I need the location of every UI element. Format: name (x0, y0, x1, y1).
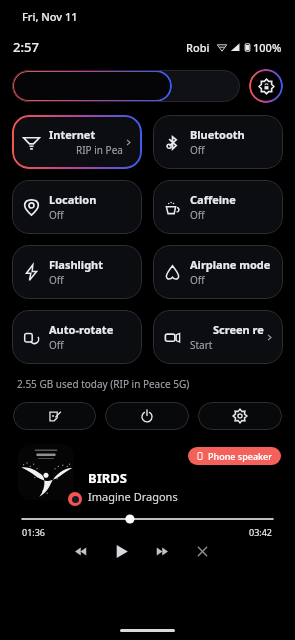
button[interactable]: Flashlight (12, 245, 142, 299)
staticText: Flashlight (49, 257, 104, 272)
button[interactable] (12, 70, 240, 102)
button[interactable]: Settings (249, 69, 283, 103)
button[interactable]: Bluetooth (153, 115, 283, 169)
staticText: Caffeine (190, 192, 236, 207)
staticText: Phone speaker (208, 450, 273, 462)
button[interactable]: Airplane mode (153, 245, 283, 299)
staticText: BIRDS (88, 469, 127, 487)
staticText: 03:42 (249, 526, 273, 538)
staticText: Screen re (213, 322, 264, 337)
staticText: Robi (186, 40, 210, 55)
button[interactable]: Caffeine (153, 180, 283, 234)
button[interactable]: Phone speaker (188, 447, 281, 465)
staticText: Off (190, 143, 205, 157)
staticText: Off (190, 208, 205, 222)
button[interactable]: Play (110, 540, 132, 562)
staticText: Off (190, 273, 205, 287)
staticText: Fri, Nov 11 (22, 9, 78, 24)
staticText: 2:57 (13, 38, 39, 56)
button[interactable]: Rewind (70, 541, 90, 561)
button[interactable]: Location (12, 180, 142, 234)
staticText: 01:36 (22, 526, 46, 538)
button[interactable]: Internet (12, 115, 142, 169)
button[interactable]: Close (192, 541, 212, 561)
button[interactable]: Fast forward (152, 541, 172, 561)
staticText: Internet (49, 127, 96, 142)
staticText: 2.55 GB used today (RIP in Peace 5G) (17, 377, 190, 391)
button[interactable]: Settings (198, 402, 282, 430)
button[interactable]: Screen re (153, 310, 283, 364)
staticText: Auto-rotate (49, 322, 114, 337)
button[interactable]: App icon (68, 492, 82, 506)
staticText: RIP in Pea (76, 143, 123, 157)
button[interactable]: Seek bar (22, 514, 273, 524)
button[interactable]: Edit tiles (13, 402, 96, 430)
staticText: Start (190, 338, 213, 352)
staticText: Imagine Dragons (88, 489, 178, 504)
staticText: Off (49, 208, 64, 222)
staticText: Off (49, 338, 64, 352)
staticText: 100% (253, 40, 282, 55)
staticText: Off (49, 273, 64, 287)
staticText: Bluetooth (190, 127, 245, 142)
staticText: Airplane mode (190, 257, 271, 272)
staticText: Location (49, 192, 97, 207)
button[interactable]: Auto-rotate (12, 310, 142, 364)
button[interactable]: Power (105, 402, 189, 430)
